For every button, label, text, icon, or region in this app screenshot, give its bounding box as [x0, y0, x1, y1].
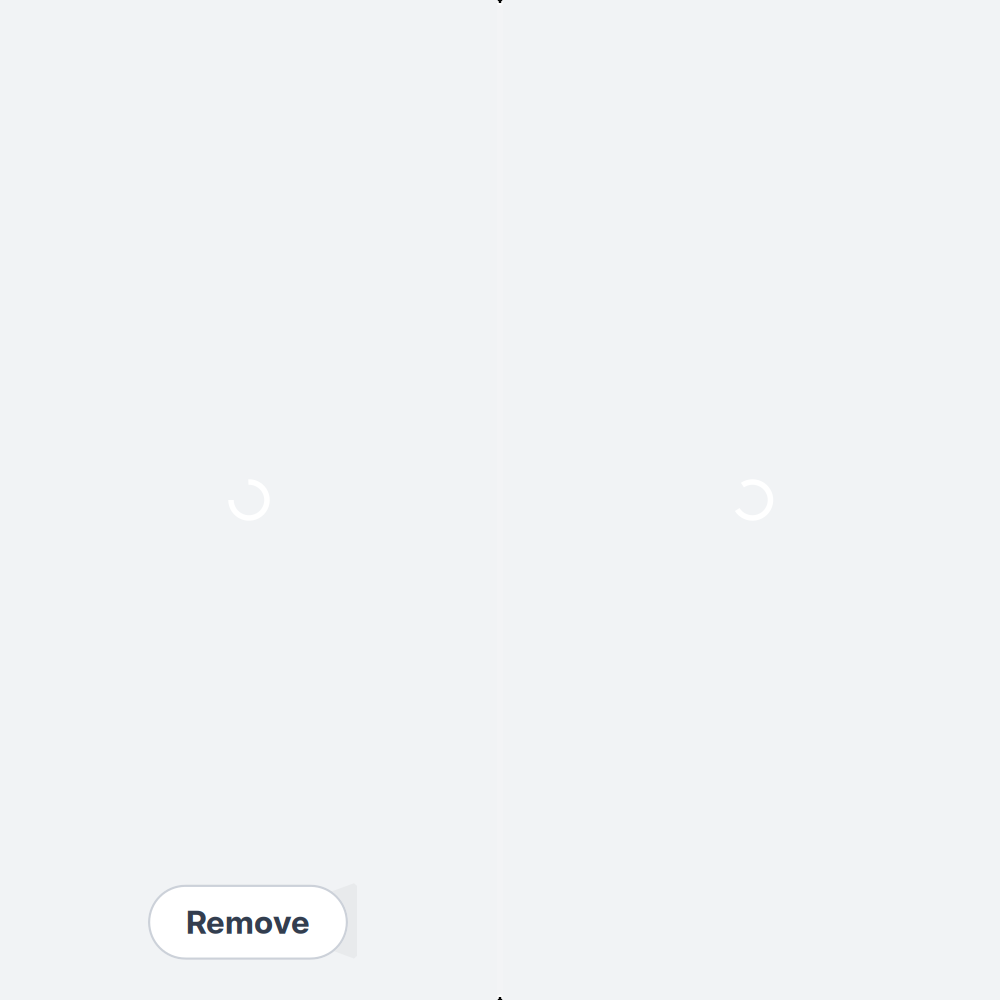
- button[interactable]: Remove: [148, 885, 348, 960]
- staticText: Remove: [186, 903, 310, 941]
